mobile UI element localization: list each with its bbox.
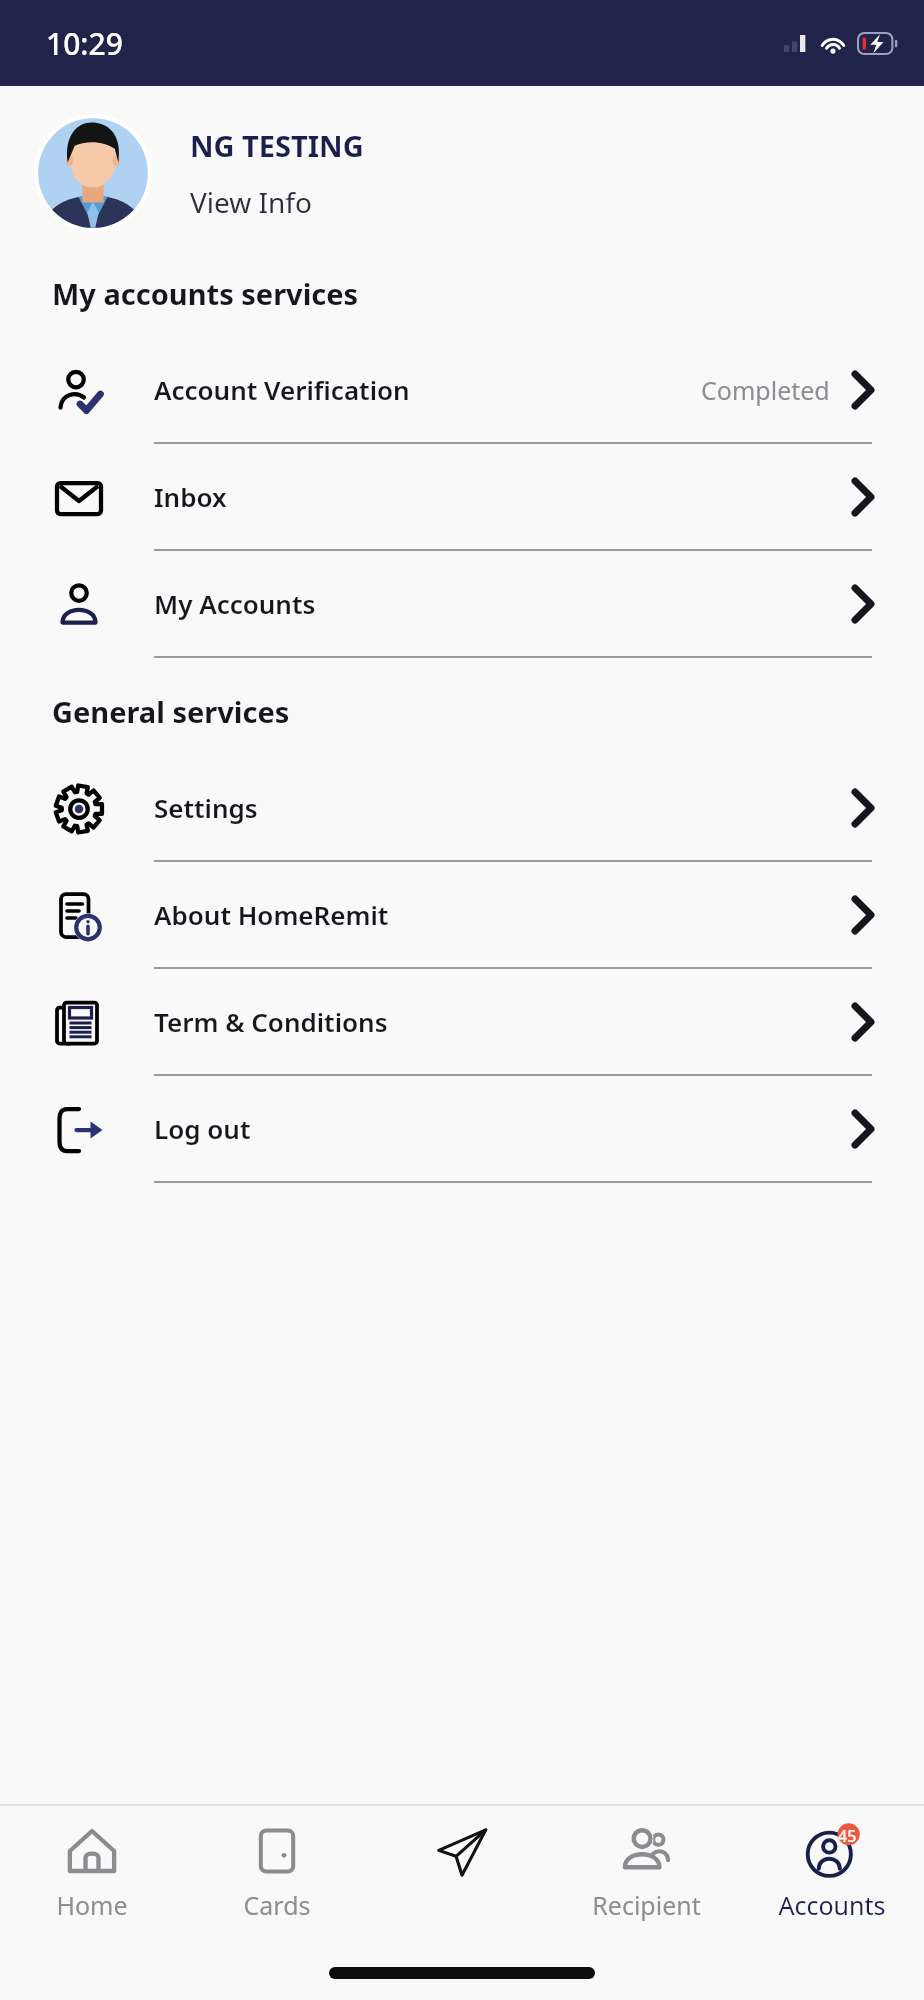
- staticText: Account Verification: [154, 372, 701, 407]
- staticText: Inbox: [154, 479, 852, 514]
- staticText: General services: [52, 692, 290, 731]
- button[interactable]: Log out: [0, 1076, 924, 1183]
- button[interactable]: Recipient: [554, 1806, 739, 1938]
- button[interactable]: My Accounts: [0, 551, 924, 658]
- staticText: Term & Conditions: [154, 1004, 852, 1039]
- button[interactable]: Send money: [369, 1806, 554, 1938]
- button[interactable]: Term & Conditions: [0, 969, 924, 1076]
- staticText: Settings: [154, 790, 852, 825]
- button[interactable]: About HomeRemit: [0, 862, 924, 969]
- button[interactable]: Inbox: [0, 444, 924, 551]
- staticText: Accounts: [778, 1888, 886, 1922]
- staticText: 45: [838, 1825, 857, 1847]
- button[interactable]: Cards: [184, 1806, 369, 1938]
- staticText: My accounts services: [52, 274, 359, 313]
- staticText: NG TESTING: [190, 126, 364, 165]
- staticText: 10:29: [46, 23, 123, 64]
- button[interactable]: Account Verification: [0, 337, 924, 444]
- staticText: Home: [56, 1888, 128, 1922]
- button[interactable]: 45: [739, 1806, 924, 1938]
- button[interactable]: Home: [0, 1806, 184, 1938]
- button[interactable]: NG TESTING: [0, 108, 924, 238]
- staticText: My Accounts: [154, 586, 852, 621]
- staticText: About HomeRemit: [154, 897, 852, 932]
- staticText: Log out: [154, 1111, 852, 1146]
- staticText: View Info: [190, 183, 312, 221]
- button[interactable]: Settings: [0, 755, 924, 862]
- staticText: Completed: [701, 373, 830, 407]
- staticText: Cards: [243, 1888, 311, 1922]
- staticText: Recipient: [592, 1888, 701, 1922]
